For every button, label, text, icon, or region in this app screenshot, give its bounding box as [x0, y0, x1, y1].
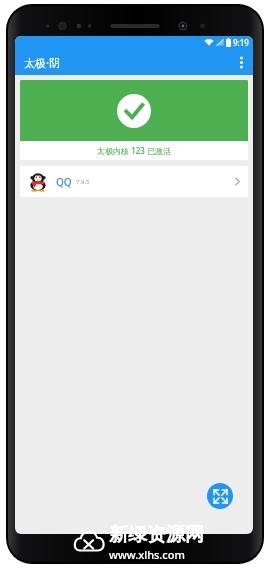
staticText: 太极·阴	[24, 55, 60, 70]
button[interactable]: QQ	[20, 166, 248, 197]
button[interactable]: Fullscreen	[207, 483, 233, 509]
staticText: 新绿资源网	[109, 523, 204, 547]
staticText: 7.9.5	[76, 178, 90, 186]
staticText: www.xlhs.com	[109, 547, 185, 562]
button[interactable]	[20, 80, 248, 141]
staticText: 太极内核 123 已激活	[97, 145, 171, 156]
button[interactable]: More options	[229, 49, 253, 75]
staticText: 9:19	[233, 37, 249, 48]
staticText: QQ	[56, 175, 72, 189]
